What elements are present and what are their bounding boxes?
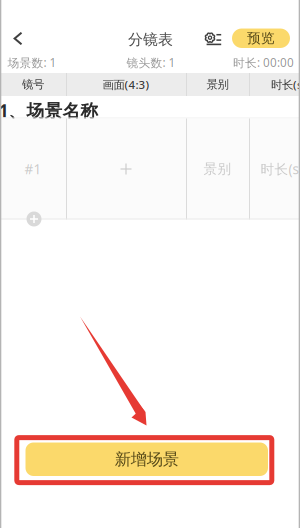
button[interactable]: Add shot <box>26 211 41 226</box>
staticText: 时长(s) <box>271 77 300 92</box>
button[interactable]: Storyboard settings <box>198 25 228 51</box>
button[interactable]: 预览 <box>232 28 290 48</box>
staticText: 画面(4:3) <box>102 77 149 92</box>
staticText: 镜头数: 1 <box>126 54 175 70</box>
staticText: 时长: 00:00 <box>233 54 294 70</box>
button[interactable]: Back <box>0 20 36 56</box>
staticText: 预览 <box>247 30 275 47</box>
staticText: 新增场景 <box>115 449 179 469</box>
staticText: 分镜表 <box>128 30 173 49</box>
staticText: 景别 <box>206 77 228 92</box>
staticText: 时长(s) <box>260 160 300 178</box>
staticText: 场景数: 1 <box>7 54 56 70</box>
staticText: #1 <box>24 160 41 178</box>
staticText: 景别 <box>203 160 231 177</box>
staticText: 镜号 <box>22 77 44 92</box>
staticText: 1、场景名称 <box>0 98 98 122</box>
button[interactable]: 新增场景 <box>25 442 268 476</box>
